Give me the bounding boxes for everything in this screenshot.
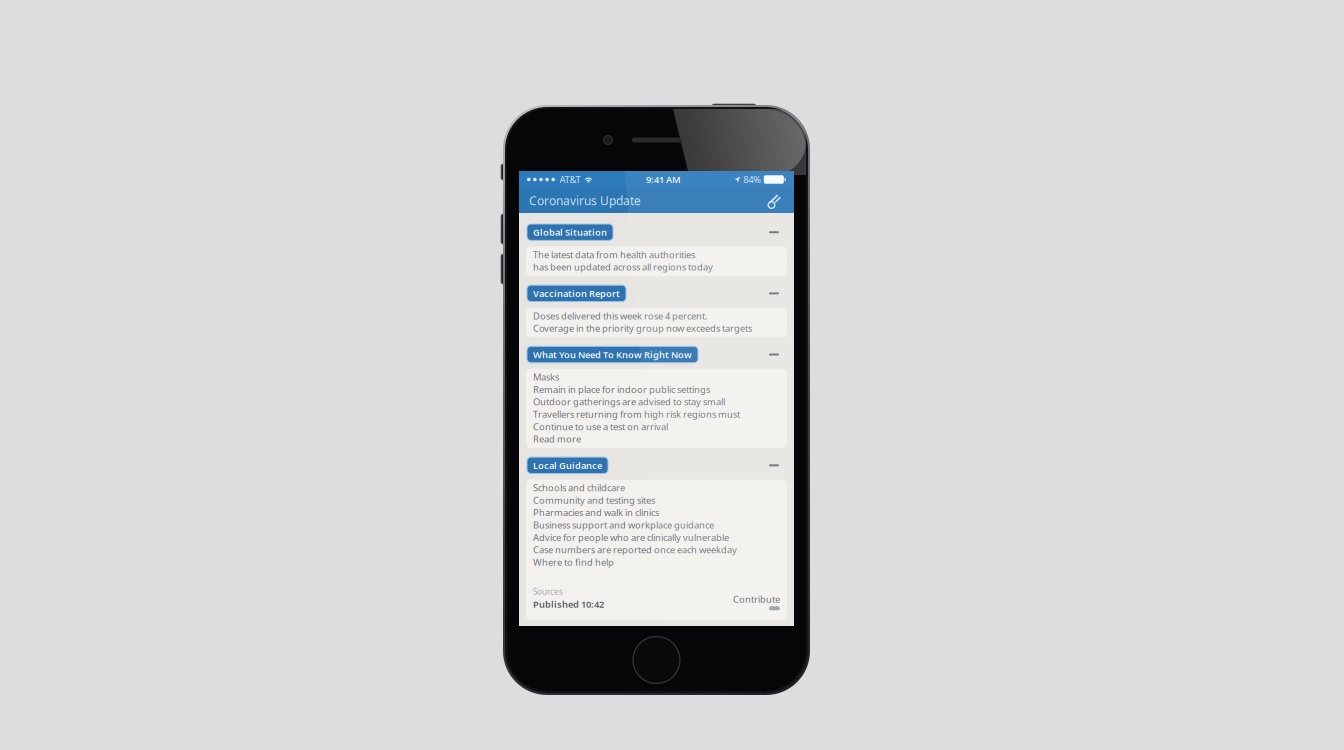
button[interactable]: Share <box>764 190 784 210</box>
staticText: Coronavirus Update <box>529 192 641 208</box>
staticText: Contribute <box>733 593 780 605</box>
staticText: The latest data from health authorities … <box>533 248 713 273</box>
button[interactable]: Collapse section <box>764 348 784 361</box>
staticText: Global Situation <box>533 226 607 238</box>
button[interactable]: Collapse section <box>764 287 784 300</box>
staticText: Vaccination Report <box>533 287 620 300</box>
button[interactable]: Vaccination Report <box>527 285 626 302</box>
button[interactable]: What You Need To Know Right Now <box>527 346 698 363</box>
button[interactable]: Local Guidance <box>527 457 608 473</box>
staticText: What You Need To Know Right Now <box>533 348 692 361</box>
staticText: Doses delivered this week rose 4 percent… <box>533 310 752 334</box>
staticText: Masks Remain in place for indoor public … <box>533 371 740 445</box>
staticText: Published 10:42 <box>533 598 604 610</box>
staticText: 84% <box>743 173 761 186</box>
staticText: 9:41 AM <box>646 173 681 186</box>
staticText: AT&T <box>559 173 580 186</box>
staticText: Schools and childcare Community and test… <box>533 481 737 568</box>
staticText: Sources <box>533 586 563 597</box>
button[interactable]: Global Situation <box>527 224 613 240</box>
button[interactable]: Collapse section <box>764 459 784 472</box>
staticText: Local Guidance <box>533 459 602 471</box>
button[interactable]: Collapse section <box>764 226 784 239</box>
